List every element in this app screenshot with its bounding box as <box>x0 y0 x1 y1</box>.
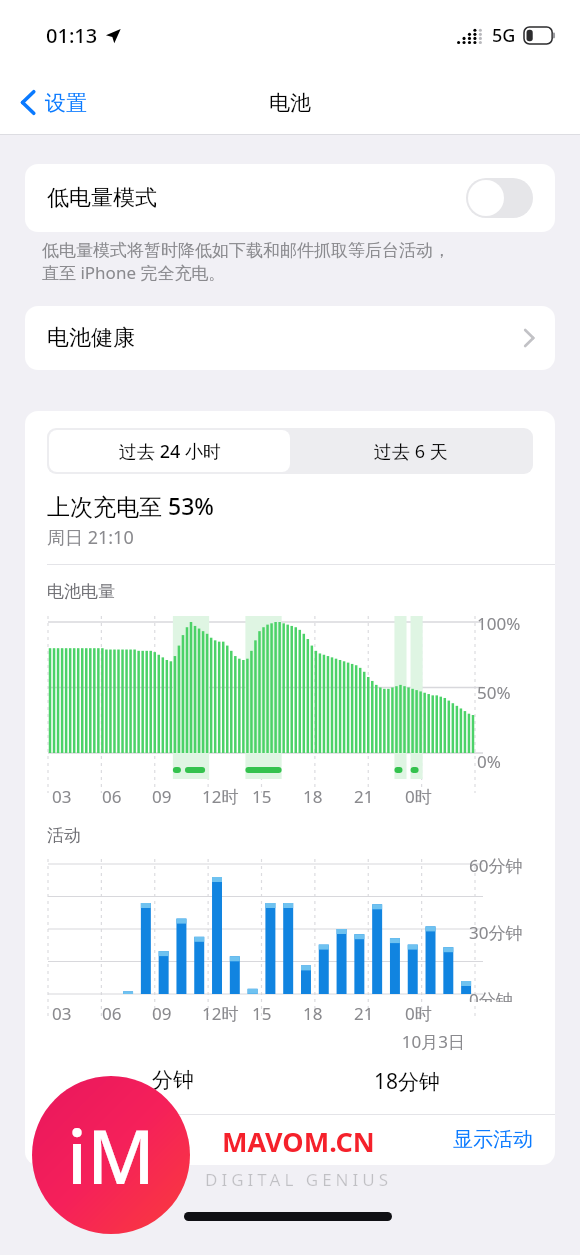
staticText: 活动 <box>47 825 81 846</box>
staticText: 21 <box>354 1002 374 1025</box>
staticText: 12时 <box>202 1002 239 1025</box>
staticText: 显示活动 <box>453 1127 533 1152</box>
staticText: 过去 6 天 <box>374 439 448 464</box>
staticText: 直至 iPhone 完全充电。 <box>42 261 226 284</box>
staticText: 15 <box>252 785 272 808</box>
staticText: MAVOM.CN <box>222 1123 375 1160</box>
staticText: 0% <box>477 750 501 773</box>
other: 低电量模式开关 <box>466 178 533 218</box>
staticText: 18 <box>303 785 323 808</box>
button[interactable]: 电池健康 <box>25 306 555 370</box>
staticText: 15 <box>252 1002 272 1025</box>
staticText: 周日 21:10 <box>47 525 134 550</box>
staticText: 上次充电至 53% <box>47 490 214 521</box>
staticText: 电池健康 <box>47 324 135 352</box>
staticText: 18分钟 <box>374 1067 441 1096</box>
button[interactable]: 过去 6 天 <box>290 430 531 472</box>
button[interactable]: 显示活动 <box>453 1127 533 1152</box>
staticText: 10月3日 <box>25 1030 465 1053</box>
staticText: 06 <box>102 785 122 808</box>
staticText: 过去 24 小时 <box>119 439 221 464</box>
staticText: 100% <box>477 612 521 635</box>
staticText: 30分钟 <box>469 921 523 944</box>
staticText: 0分钟 <box>469 988 513 1002</box>
staticText: 12时 <box>202 785 239 808</box>
staticText: 18 <box>303 1002 323 1025</box>
staticText: 03 <box>52 785 72 808</box>
staticText: 分钟 <box>152 1067 194 1093</box>
button[interactable]: 过去 24 小时 <box>49 430 290 472</box>
staticText: 电池电量 <box>47 581 115 602</box>
staticText: 电池 <box>269 90 311 116</box>
staticText: 06 <box>102 1002 122 1025</box>
staticText: 0时 <box>405 785 432 808</box>
staticText: 60分钟 <box>469 854 523 877</box>
staticText: 0时 <box>405 1002 432 1025</box>
staticText: App的电池用量 <box>47 1126 185 1153</box>
staticText: 03 <box>52 1002 72 1025</box>
staticText: DIGITAL GENIUS <box>205 1168 393 1191</box>
staticText: 01:13 <box>46 22 98 49</box>
staticText: 50% <box>477 681 511 704</box>
staticText: iM <box>67 1105 155 1206</box>
staticText: 21 <box>354 785 374 808</box>
button[interactable]: 设置 <box>14 83 93 122</box>
staticText: 09 <box>152 785 172 808</box>
staticText: 5G <box>492 23 516 48</box>
staticText: 09 <box>152 1002 172 1025</box>
staticText: 低电量模式 <box>47 184 157 212</box>
staticText: 低电量模式将暂时降低如下载和邮件抓取等后台活动， <box>42 240 450 261</box>
button[interactable]: 低电量模式 <box>25 164 555 232</box>
staticText: 设置 <box>45 90 87 116</box>
